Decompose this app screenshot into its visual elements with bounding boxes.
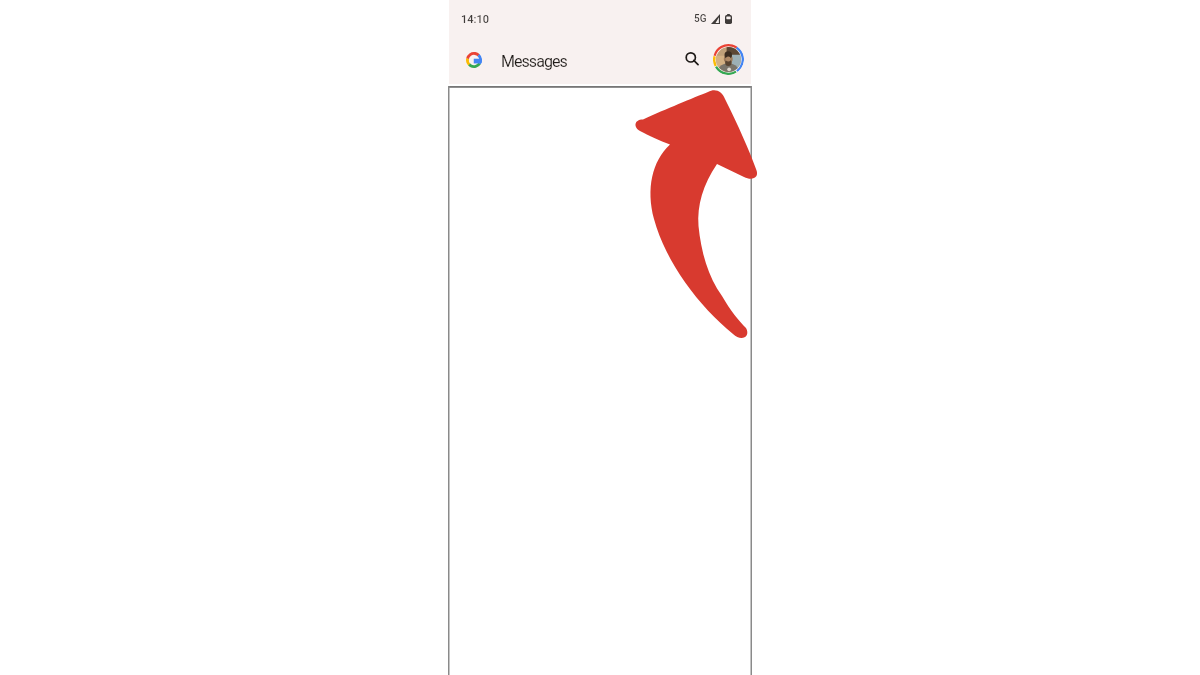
staticText: 14:10 (461, 13, 489, 26)
button[interactable]: Account profile (712, 43, 744, 75)
button[interactable]: Search (677, 44, 707, 74)
staticText: 5G (694, 13, 707, 25)
staticText: Messages (501, 52, 567, 71)
